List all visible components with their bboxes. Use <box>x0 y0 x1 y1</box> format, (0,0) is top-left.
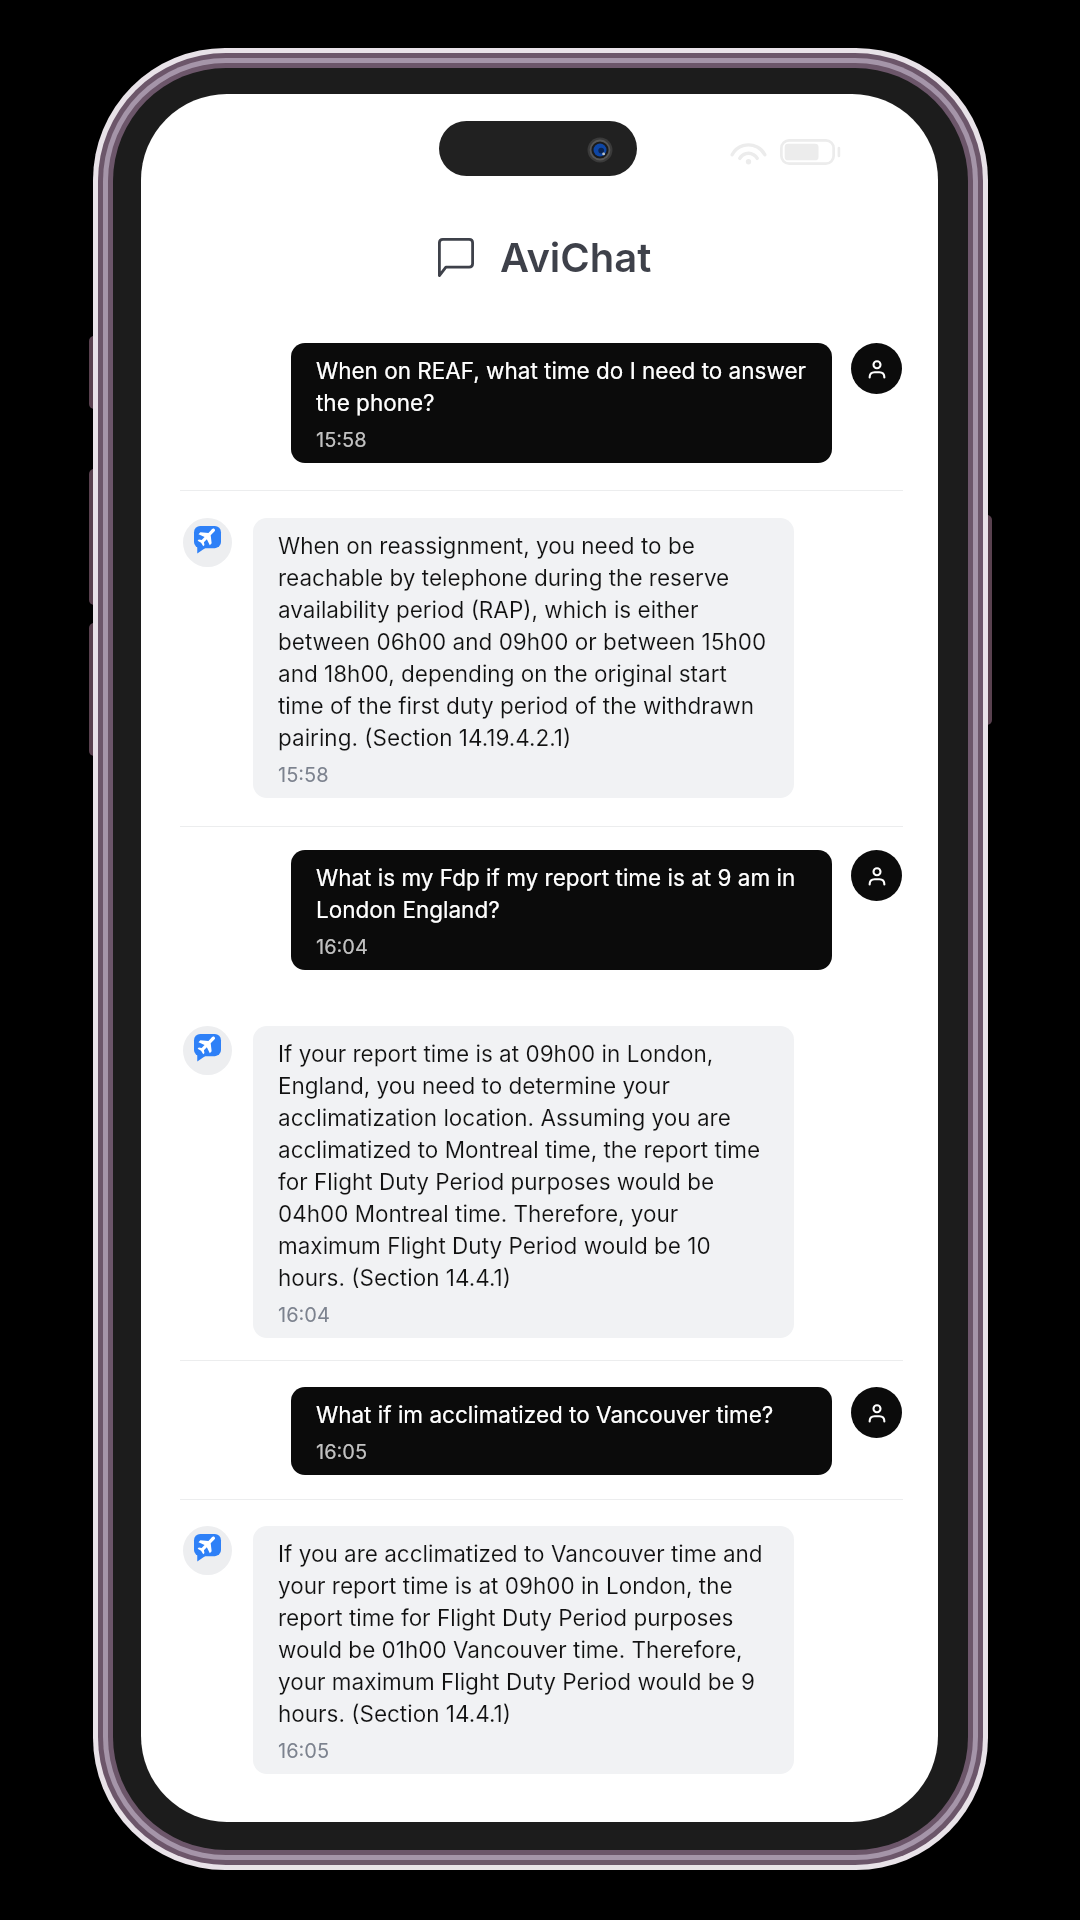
button[interactable]: AviChat <box>146 233 938 281</box>
staticText: 16:05 <box>278 1736 330 1763</box>
button[interactable]: When on REAF, what time do I need to ans… <box>291 343 832 463</box>
button[interactable]: When on reassignment, you need to be rea… <box>253 518 794 798</box>
button[interactable]: If your report time is at 09h00 in Londo… <box>253 1026 794 1338</box>
staticText: 16:05 <box>316 1437 368 1464</box>
staticText: When on reassignment, you need to be rea… <box>278 529 769 753</box>
staticText: 15:58 <box>316 425 367 452</box>
button[interactable]: Your profile <box>851 850 902 901</box>
staticText: AviChat <box>500 233 652 281</box>
button[interactable]: Your profile <box>851 343 902 394</box>
staticText: What if im acclimatized to Vancouver tim… <box>316 1398 774 1430</box>
staticText: When on REAF, what time do I need to ans… <box>316 354 807 418</box>
other: Wi-Fi connected <box>732 138 765 165</box>
button[interactable]: What is my Fdp if my report time is at 9… <box>291 850 832 970</box>
staticText: 16:04 <box>278 1300 330 1327</box>
other: Battery <box>780 139 840 165</box>
button[interactable]: If you are acclimatized to Vancouver tim… <box>253 1526 794 1774</box>
staticText: 15:58 <box>278 760 329 787</box>
button[interactable]: AviChat assistant <box>183 1026 232 1075</box>
staticText: What is my Fdp if my report time is at 9… <box>316 861 807 925</box>
button[interactable]: What if im acclimatized to Vancouver tim… <box>291 1387 832 1475</box>
staticText: If you are acclimatized to Vancouver tim… <box>278 1537 769 1729</box>
button[interactable]: AviChat assistant <box>183 1526 232 1575</box>
button[interactable]: Your profile <box>851 1387 902 1438</box>
staticText: If your report time is at 09h00 in Londo… <box>278 1037 769 1293</box>
button[interactable]: AviChat assistant <box>183 518 232 567</box>
staticText: 16:04 <box>316 932 368 959</box>
